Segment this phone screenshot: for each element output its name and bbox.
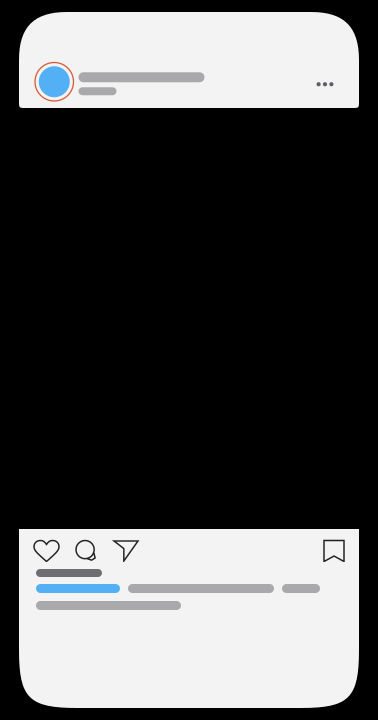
button[interactable]: More options [306, 62, 344, 101]
button[interactable]: Share [114, 540, 143, 562]
button[interactable]: Like [34, 540, 76, 562]
button[interactable]: Comment [76, 540, 114, 562]
button[interactable]: Save [324, 540, 344, 562]
